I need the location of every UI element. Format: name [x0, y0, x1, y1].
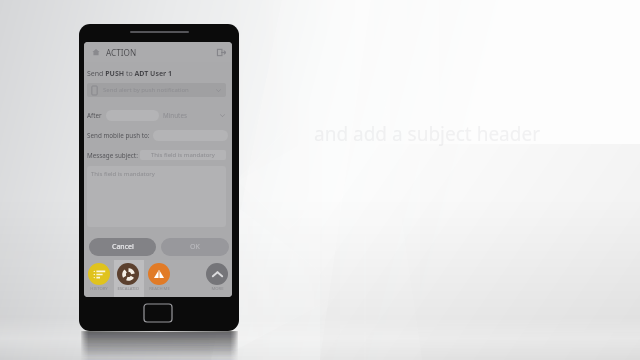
staticText: After	[87, 111, 102, 120]
button[interactable]: REACH ME	[148, 263, 170, 292]
button[interactable]: Minutes	[163, 110, 226, 121]
staticText: Send alert by push notification	[103, 86, 189, 94]
staticText: Minutes	[163, 111, 187, 120]
button[interactable]: This field is mandatory	[140, 150, 226, 160]
staticText: Cancel	[112, 242, 134, 252]
button[interactable]: Logout	[217, 48, 226, 57]
button[interactable]: ESCALATIONS	[117, 263, 139, 292]
button[interactable]: Home	[92, 42, 226, 62]
staticText: and add a subject header	[314, 121, 541, 147]
button[interactable]: HISTORY	[88, 263, 110, 292]
button[interactable]: Send alert by push notification	[87, 83, 226, 97]
staticText: OK	[190, 242, 200, 252]
staticText: Send mobile push to:	[87, 131, 150, 140]
button[interactable]: Home	[92, 48, 100, 56]
button[interactable]: OK	[161, 238, 229, 256]
button[interactable]: Cancel	[89, 238, 156, 256]
staticText: ESCALATIONS	[117, 286, 139, 292]
staticText: REACH ME	[149, 286, 170, 292]
staticText: Send PUSH to ADT User 1	[87, 69, 173, 79]
staticText: HISTORY	[90, 286, 108, 292]
staticText: Message subject:	[87, 151, 138, 160]
button[interactable]: MORE	[206, 263, 228, 292]
staticText: ACTION	[106, 47, 137, 58]
staticText: This field is mandatory	[151, 151, 215, 159]
staticText: This field is mandatory	[91, 170, 155, 178]
staticText: MORE	[211, 286, 224, 292]
